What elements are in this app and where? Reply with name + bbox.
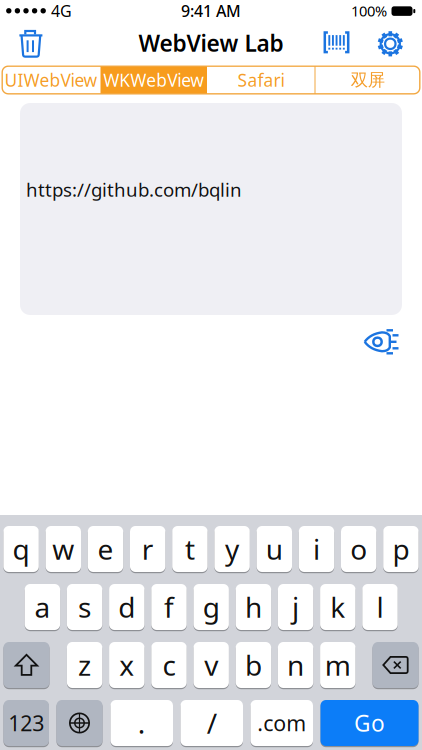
staticText: 9:41 AM xyxy=(181,0,241,21)
staticText: g xyxy=(203,588,220,626)
staticText: u xyxy=(266,530,283,568)
button[interactable]: . xyxy=(110,699,173,747)
button[interactable]: n xyxy=(278,641,313,689)
button[interactable]: Shift xyxy=(3,641,49,689)
button[interactable]: w xyxy=(46,525,81,573)
staticText: p xyxy=(392,530,409,568)
button[interactable]: h xyxy=(236,583,271,631)
button[interactable]: Settings xyxy=(376,30,404,58)
staticText: https://github.com/bqlin xyxy=(26,177,242,202)
staticText: . xyxy=(138,704,146,742)
staticText: WebView Lab xyxy=(138,28,283,58)
button[interactable]: r xyxy=(130,525,165,573)
button[interactable]: Go xyxy=(320,699,418,747)
button[interactable]: j xyxy=(278,583,313,631)
button[interactable]: UIWebView xyxy=(2,66,99,94)
staticText: .com xyxy=(257,709,306,737)
button[interactable]: s xyxy=(67,583,102,631)
button[interactable]: a xyxy=(25,583,60,631)
staticText: a xyxy=(34,588,50,626)
button[interactable]: URL input xyxy=(20,103,402,315)
button[interactable]: x xyxy=(109,641,144,689)
staticText: q xyxy=(13,530,30,568)
button[interactable]: v xyxy=(193,641,229,689)
button[interactable]: .com xyxy=(250,699,313,747)
button[interactable]: l xyxy=(362,583,398,631)
staticText: j xyxy=(292,588,299,626)
button[interactable]: Delete xyxy=(372,641,418,689)
button[interactable]: k xyxy=(320,583,355,631)
button[interactable]: y xyxy=(214,525,250,573)
staticText: 双屏 xyxy=(351,69,385,91)
button[interactable]: b xyxy=(236,641,271,689)
button[interactable]: c xyxy=(151,641,187,689)
staticText: k xyxy=(330,588,345,626)
button[interactable]: d xyxy=(109,583,144,631)
staticText: x xyxy=(119,646,134,684)
button[interactable]: o xyxy=(341,525,376,573)
button[interactable]: g xyxy=(193,583,229,631)
staticText: v xyxy=(204,646,218,684)
button[interactable]: 双屏 xyxy=(316,66,420,94)
button[interactable]: Safari xyxy=(208,66,314,94)
button[interactable]: z xyxy=(67,641,102,689)
button[interactable]: m xyxy=(320,641,355,689)
button[interactable]: Next keyboard xyxy=(56,699,102,747)
staticText: Safari xyxy=(237,68,284,91)
staticText: s xyxy=(78,588,91,626)
staticText: 123 xyxy=(8,709,44,737)
button[interactable]: e xyxy=(88,525,123,573)
staticText: w xyxy=(52,530,74,568)
staticText: y xyxy=(225,530,239,568)
button[interactable]: f xyxy=(151,583,187,631)
staticText: l xyxy=(376,588,383,626)
staticText: d xyxy=(118,588,135,626)
button[interactable]: / xyxy=(180,699,243,747)
button[interactable]: Delete xyxy=(19,30,46,58)
staticText: o xyxy=(350,530,367,568)
staticText: 100% xyxy=(351,1,387,21)
staticText: r xyxy=(142,530,154,568)
staticText: t xyxy=(185,530,195,568)
button[interactable]: i xyxy=(299,525,334,573)
button[interactable]: u xyxy=(257,525,292,573)
staticText: b xyxy=(245,646,262,684)
staticText: Go xyxy=(354,708,385,738)
button[interactable]: Scan code xyxy=(323,31,349,53)
staticText: m xyxy=(325,646,351,684)
button[interactable]: t xyxy=(172,525,208,573)
button[interactable]: q xyxy=(3,525,39,573)
staticText: WKWebView xyxy=(103,68,204,91)
staticText: e xyxy=(97,530,113,568)
button[interactable]: WKWebView xyxy=(101,66,206,94)
staticText: UIWebView xyxy=(4,68,97,91)
staticText: i xyxy=(313,530,320,568)
button[interactable]: p xyxy=(383,525,419,573)
button[interactable]: Preview xyxy=(362,328,400,356)
staticText: / xyxy=(207,704,217,742)
staticText: c xyxy=(162,646,175,684)
staticText: f xyxy=(164,588,174,626)
button[interactable]: 123 xyxy=(3,699,49,747)
staticText: n xyxy=(287,646,304,684)
staticText: z xyxy=(78,646,91,684)
staticText: 4G xyxy=(51,0,72,21)
staticText: h xyxy=(245,588,262,626)
